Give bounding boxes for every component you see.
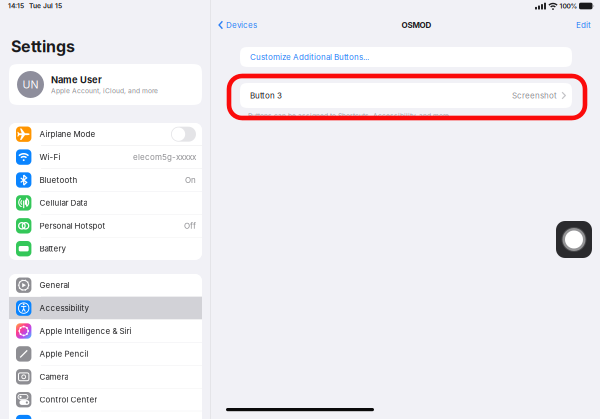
button[interactable]: Apple Intelligence & Siri [9, 320, 202, 342]
staticText: On [185, 175, 196, 185]
staticText: Tue Jul 15 [29, 2, 62, 10]
staticText: Control Center [39, 395, 97, 404]
staticText: Name User [51, 74, 102, 85]
button[interactable]: Devices [211, 15, 257, 35]
staticText: Devices [226, 20, 257, 30]
button[interactable]: Edit [576, 15, 600, 35]
button[interactable]: UN [9, 64, 202, 105]
button[interactable]: Accessibility [9, 297, 202, 319]
button[interactable]: Customize Additional Buttons... [240, 47, 572, 67]
staticText: Cellular Data [39, 198, 87, 208]
staticText: Accessibility [39, 303, 88, 313]
button[interactable]: Cellular Data [9, 192, 202, 214]
staticText: Button 3 [250, 91, 282, 100]
staticText: Apple Account, iCloud, and more [51, 87, 158, 95]
staticText: Apple Pencil [39, 349, 88, 359]
staticText: Edit [576, 20, 591, 30]
button[interactable]: Camera [9, 366, 202, 388]
button[interactable]: Apple Pencil [9, 343, 202, 365]
staticText: Battery [39, 244, 65, 253]
button[interactable]: Button 3 [240, 83, 572, 108]
staticText: Off [184, 221, 196, 230]
staticText: Wi-Fi [39, 152, 60, 162]
staticText: Personal Hotspot [39, 221, 105, 230]
staticText: OSMOD [401, 20, 431, 30]
staticText: 100% [559, 2, 577, 10]
button[interactable]: Bluetooth [9, 169, 202, 191]
staticText: Settings [11, 37, 75, 56]
staticText: Screenshot [512, 91, 557, 100]
staticText: Apple Intelligence & Siri [39, 326, 131, 336]
button[interactable]: Battery [9, 237, 202, 260]
staticText: 14:15 [8, 2, 24, 10]
staticText: Customize Additional Buttons... [250, 52, 369, 62]
staticText: Camera [39, 372, 68, 381]
staticText: UN [22, 78, 38, 91]
button[interactable]: AssistiveTouch [556, 221, 592, 258]
button[interactable]: General [9, 274, 202, 296]
button[interactable]: Control Center [9, 388, 202, 411]
button[interactable]: Wi-Fi [9, 146, 202, 168]
button[interactable]: Airplane Mode [9, 123, 202, 145]
staticText: General [39, 280, 69, 290]
staticText: elecom5g-xxxxx [133, 152, 196, 162]
button[interactable]: Personal Hotspot [9, 215, 202, 237]
staticText: Airplane Mode [39, 129, 95, 139]
button[interactable]: Display & Brightness [9, 411, 202, 419]
staticText: Buttons can be assigned to Shortcuts, Ac… [248, 112, 451, 120]
staticText: Bluetooth [39, 175, 77, 185]
